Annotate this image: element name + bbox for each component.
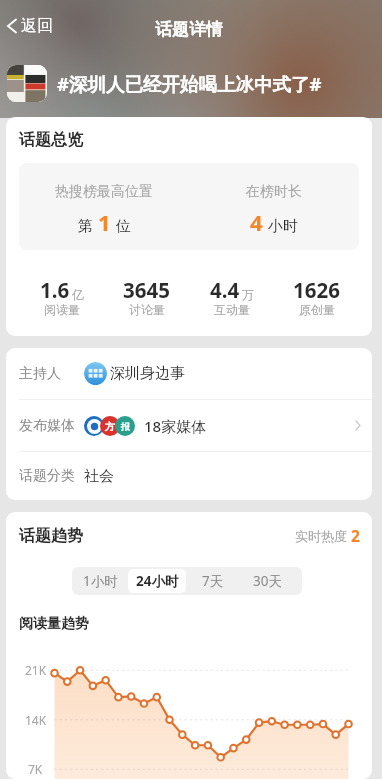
staticText: 在榜时长 — [246, 183, 302, 201]
staticText: 方 — [105, 420, 115, 433]
staticText: 主持人 — [19, 365, 61, 383]
staticText: 报 — [121, 421, 130, 432]
staticText: 3645 — [123, 276, 170, 304]
staticText: 第 — [78, 217, 93, 236]
staticText: 互动量 — [214, 302, 250, 317]
staticText: 14K — [25, 712, 47, 728]
button[interactable]: 24小时 — [128, 569, 186, 593]
button[interactable]: 7天 — [189, 569, 237, 593]
staticText: 18家媒体 — [144, 416, 207, 436]
staticText: 亿 — [72, 287, 84, 302]
staticText: 讨论量 — [129, 302, 165, 317]
staticText: 实时热度 — [295, 528, 347, 544]
staticText: 小时 — [268, 217, 298, 236]
button[interactable]: 话题分类 — [6, 452, 372, 500]
staticText: 话题总览 — [19, 130, 83, 150]
staticText: 话题详情 — [155, 19, 223, 40]
staticText: 原创量 — [299, 302, 335, 317]
staticText: 21K — [25, 662, 47, 678]
staticText: 深圳身边事 — [110, 364, 185, 383]
button[interactable]: 30天 — [239, 569, 295, 593]
button[interactable]: 返回 — [0, 13, 65, 39]
other: 查看媒体列表 — [355, 420, 361, 431]
staticText: 7天 — [202, 572, 224, 590]
staticText: 阅读量 — [44, 302, 80, 317]
staticText: 1 — [98, 207, 111, 237]
button[interactable]: 主持人 — [6, 348, 372, 399]
staticText: 4 — [250, 207, 263, 237]
button[interactable]: 1小时 — [74, 569, 127, 593]
staticText: 热搜榜最高位置 — [55, 183, 153, 201]
staticText: 7K — [28, 761, 43, 777]
staticText: 阅读量趋势 — [19, 615, 89, 633]
staticText: 30天 — [253, 572, 282, 590]
staticText: 4.4 — [210, 276, 240, 304]
staticText: 话题趋势 — [19, 526, 83, 546]
staticText: #深圳人已经开始喝上冰中式了# — [57, 71, 322, 96]
staticText: 2 — [351, 525, 360, 546]
button[interactable]: 发布媒体 — [6, 400, 372, 451]
staticText: 话题分类 — [19, 467, 75, 485]
staticText: 发布媒体 — [19, 417, 75, 435]
staticText: 1.6 — [40, 276, 70, 304]
staticText: 返回 — [21, 16, 53, 36]
staticText: 24小时 — [136, 572, 179, 590]
staticText: 1626 — [293, 276, 340, 304]
staticText: 社会 — [84, 467, 114, 486]
staticText: 万 — [242, 287, 254, 302]
staticText: 位 — [116, 217, 131, 236]
staticText: 1小时 — [83, 572, 118, 590]
